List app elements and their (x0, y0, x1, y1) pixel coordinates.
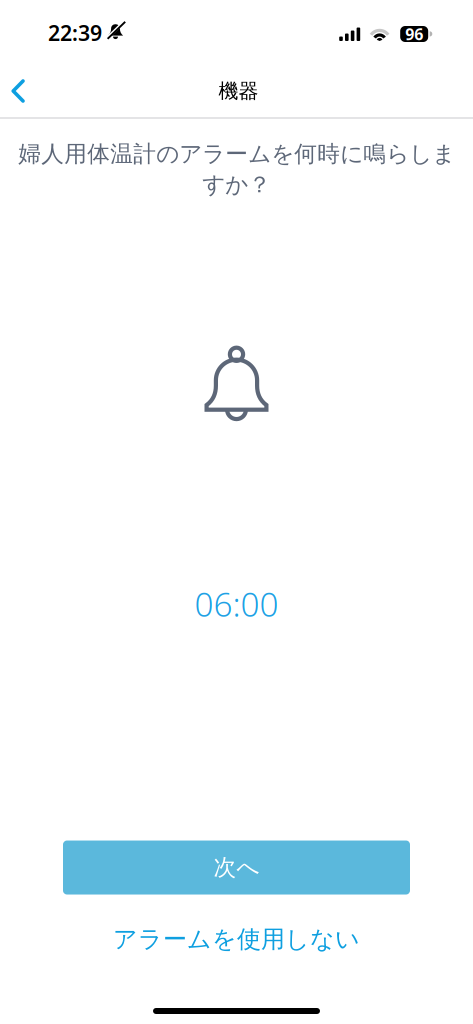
staticText: 婦人用体温計のアラームを何時に鳴らしますか？ (18, 140, 455, 199)
button[interactable]: アラームを使用しない (89, 915, 384, 963)
staticText: 機器 (218, 79, 258, 103)
staticText: 22:39 (48, 19, 102, 47)
staticText: 06:00 (194, 582, 278, 626)
staticText: 96 (405, 23, 423, 45)
staticText: アラームを使用しない (113, 924, 360, 954)
staticText: 次へ (213, 854, 259, 881)
button[interactable]: 次へ (63, 840, 410, 894)
button[interactable]: 戻る (0, 66, 39, 114)
